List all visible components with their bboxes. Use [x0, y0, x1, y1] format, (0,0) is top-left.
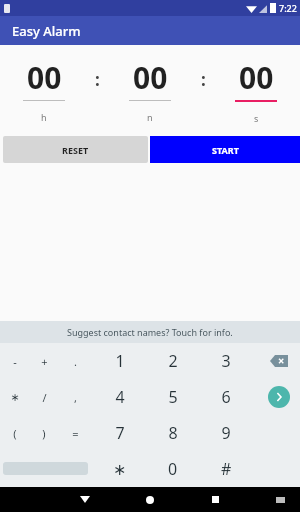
staticText: 6 — [221, 386, 231, 408]
button[interactable]: / — [24, 379, 64, 415]
button[interactable]: Suggest contact names? Touch for info. — [0, 321, 300, 343]
staticText: 00 — [133, 57, 168, 98]
button[interactable]: Backspace — [259, 343, 299, 379]
staticText: : — [201, 68, 206, 91]
button[interactable]: 1 — [100, 343, 140, 379]
staticText: 00 — [27, 57, 62, 98]
staticText: START — [212, 144, 239, 156]
button[interactable]: Recents — [195, 487, 235, 512]
button[interactable]: Back — [65, 487, 105, 512]
button[interactable]: 7 — [100, 415, 140, 451]
button[interactable]: - — [0, 343, 35, 379]
staticText: 9 — [221, 422, 231, 444]
button[interactable]: 3 — [206, 343, 246, 379]
staticText: / — [42, 390, 47, 405]
staticText: 7:22 — [279, 2, 297, 14]
staticText: h — [41, 111, 47, 123]
staticText: 00 — [239, 57, 274, 98]
button[interactable]: ) — [24, 415, 64, 451]
button[interactable]: 0 — [153, 451, 193, 487]
button[interactable]: ∗ — [100, 451, 140, 487]
staticText: + — [41, 354, 48, 369]
staticText: 5 — [168, 386, 178, 408]
button[interactable]: 8 — [153, 415, 193, 451]
staticText: s — [254, 112, 259, 124]
button[interactable]: 4 — [100, 379, 140, 415]
staticText: n — [147, 111, 153, 123]
staticText: 7 — [115, 422, 125, 444]
button[interactable]: 5 — [153, 379, 193, 415]
button[interactable]: START — [150, 136, 300, 163]
button[interactable]: RESET — [3, 136, 148, 163]
staticText: ∗ — [113, 460, 127, 479]
staticText: . — [74, 354, 77, 369]
button[interactable]: 9 — [206, 415, 246, 451]
button[interactable]: Enter — [259, 379, 299, 415]
button[interactable]: Keyboard — [265, 487, 295, 512]
staticText: Easy Alarm — [12, 22, 81, 40]
staticText: # — [221, 458, 232, 480]
button[interactable]: , — [55, 379, 95, 415]
staticText: 8 — [168, 422, 178, 444]
staticText: 4 — [115, 386, 125, 408]
staticText: ∗ — [10, 391, 20, 404]
staticText: ( — [13, 426, 17, 441]
staticText: = — [72, 426, 79, 441]
button[interactable]: = — [55, 415, 95, 451]
staticText: - — [13, 354, 17, 369]
staticText: Suggest contact names? Touch for info. — [67, 326, 233, 338]
button[interactable]: 00 — [106, 57, 194, 123]
button[interactable]: Home — [130, 487, 170, 512]
button[interactable]: 00 — [212, 57, 300, 124]
button[interactable]: 6 — [206, 379, 246, 415]
button[interactable]: 00 — [0, 57, 88, 123]
staticText: : — [95, 68, 100, 91]
staticText: 1 — [115, 350, 125, 372]
button[interactable]: 2 — [153, 343, 193, 379]
button[interactable]: ∗ — [0, 379, 35, 415]
staticText: 0 — [168, 458, 178, 480]
staticText: 3 — [221, 350, 231, 372]
button[interactable]: . — [55, 343, 95, 379]
button[interactable]: ( — [0, 415, 35, 451]
staticText: ) — [42, 426, 46, 441]
button[interactable]: # — [206, 451, 246, 487]
button[interactable]: + — [24, 343, 64, 379]
staticText: RESET — [62, 144, 89, 156]
staticText: 2 — [168, 350, 178, 372]
staticText: , — [74, 390, 77, 405]
